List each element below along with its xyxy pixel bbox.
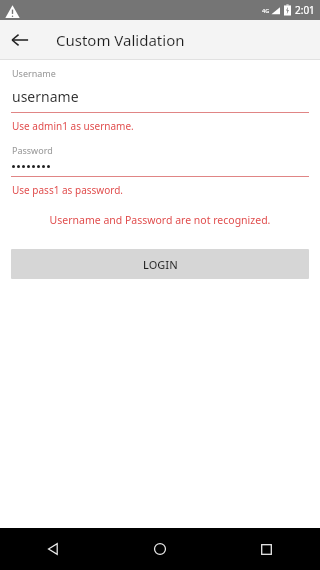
- staticText: Username and Password are not recognized…: [0, 213, 320, 227]
- staticText: Username: [12, 67, 56, 79]
- button[interactable]: Back: [0, 528, 106, 570]
- staticText: Use pass1 as password.: [12, 183, 124, 197]
- button[interactable]: LOGIN: [11, 249, 309, 279]
- staticText: LOGIN: [143, 257, 178, 272]
- staticText: Password: [12, 144, 53, 156]
- staticText: 4G: [262, 7, 270, 14]
- staticText: Custom Validation: [56, 30, 185, 50]
- staticText: Use admin1 as username.: [12, 119, 134, 133]
- staticText: 2:01: [295, 3, 315, 17]
- button[interactable]: Recent apps: [213, 528, 320, 570]
- staticText: username: [12, 87, 79, 106]
- button[interactable]: Home: [106, 528, 213, 570]
- button[interactable]: Back: [0, 20, 40, 60]
